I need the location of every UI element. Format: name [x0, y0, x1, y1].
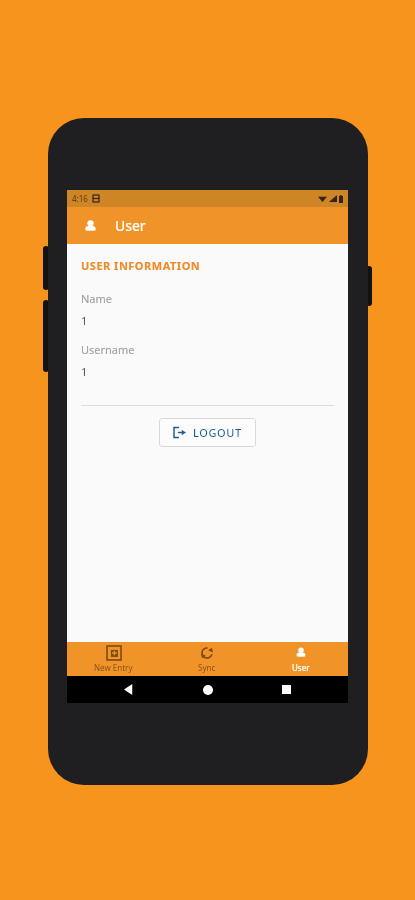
button[interactable]: Back	[112, 676, 146, 703]
staticText: Sync	[198, 662, 216, 673]
button[interactable]: Recents	[269, 676, 303, 703]
staticText: 1	[81, 313, 88, 328]
staticText: 4:16	[72, 193, 88, 204]
button[interactable]: New Entry	[67, 642, 160, 676]
button[interactable]: Sync	[160, 642, 254, 676]
staticText: Name	[81, 291, 113, 306]
staticText: LOGOUT	[193, 425, 242, 440]
staticText: User	[292, 662, 310, 673]
staticText: 1	[81, 364, 88, 379]
staticText: User	[115, 216, 146, 235]
button[interactable]: User	[77, 213, 103, 239]
staticText: USER INFORMATION	[81, 258, 201, 273]
button[interactable]: User	[254, 642, 348, 676]
staticText: New Entry	[94, 662, 133, 673]
button[interactable]: Home	[191, 676, 225, 703]
button[interactable]: LOGOUT	[159, 418, 256, 447]
staticText: Username	[81, 342, 135, 357]
